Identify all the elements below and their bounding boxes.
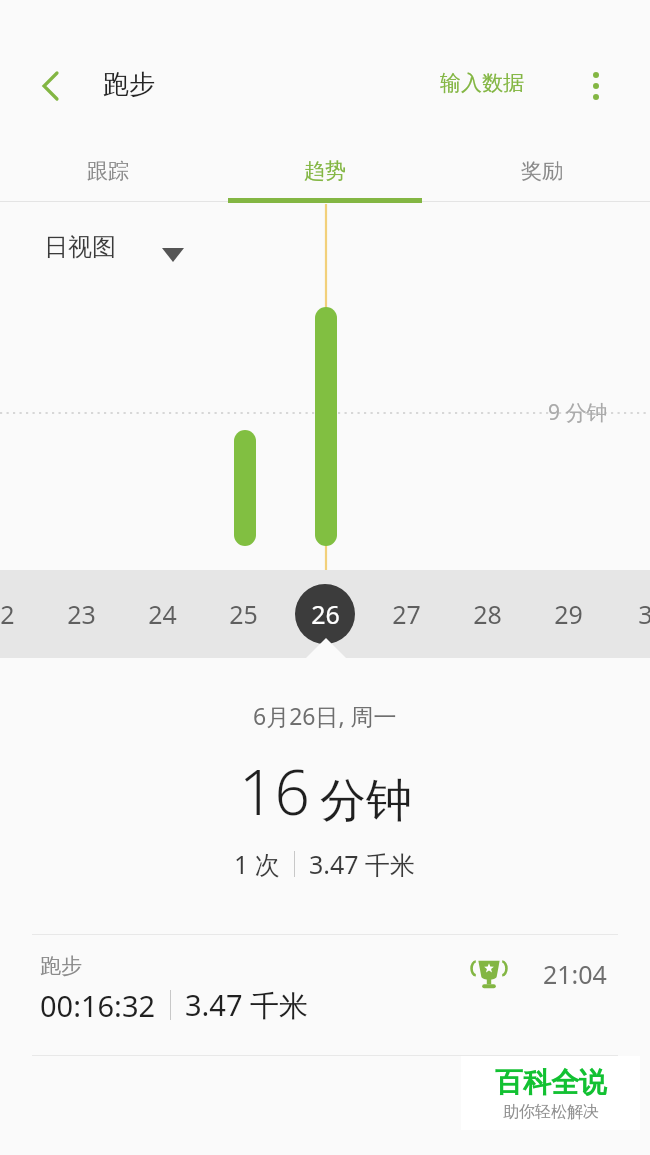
button[interactable]: 跑步 — [0, 935, 650, 1055]
button[interactable]: More options — [570, 60, 622, 112]
staticText: 00:16:32 — [40, 986, 156, 1025]
staticText: 6月26日, 周一 — [253, 700, 397, 731]
button[interactable]: 24 — [129, 580, 195, 648]
staticText: 2 — [0, 597, 15, 631]
button[interactable]: 29 — [535, 580, 601, 648]
staticText: 24 — [148, 597, 177, 631]
button[interactable]: 26 — [292, 580, 358, 648]
button[interactable]: 27 — [373, 580, 439, 648]
button[interactable]: 奖励 — [433, 140, 650, 202]
staticText: 跑步 — [103, 68, 155, 101]
staticText: 跑步 — [40, 953, 82, 979]
button[interactable]: 25 — [210, 580, 276, 648]
staticText: 27 — [392, 597, 421, 631]
button[interactable]: 3 — [612, 580, 650, 648]
staticText: 跟踪 — [87, 158, 129, 184]
staticText: 奖励 — [521, 158, 563, 184]
staticText: 3 — [638, 597, 650, 631]
staticText: 百科全说 — [495, 1065, 607, 1100]
staticText: 3.47 千米 — [185, 985, 309, 1025]
staticText: 3.47 千米 — [309, 847, 416, 881]
button[interactable]: Change view — [160, 240, 186, 266]
staticText: 16 — [239, 749, 310, 833]
button[interactable]: Back — [26, 62, 74, 110]
staticText: 助你轻松解决 — [503, 1102, 599, 1122]
button[interactable]: 23 — [48, 580, 114, 648]
button[interactable]: 跟踪 — [0, 140, 216, 202]
button[interactable]: 28 — [454, 580, 520, 648]
button[interactable]: 日视图 — [44, 232, 116, 262]
button[interactable]: 趋势 — [216, 140, 433, 202]
button[interactable]: 2 — [0, 580, 40, 648]
staticText: 分钟 — [320, 772, 412, 830]
staticText: 28 — [473, 597, 502, 631]
staticText: 29 — [554, 597, 583, 631]
staticText: 21:04 — [543, 957, 607, 991]
staticText: 26 — [311, 597, 340, 631]
staticText: 输入数据 — [440, 70, 524, 96]
staticText: 1 次 — [234, 847, 280, 881]
staticText: 趋势 — [304, 158, 346, 184]
staticText: 25 — [229, 597, 258, 631]
staticText: 9 分钟 — [548, 398, 608, 427]
button[interactable]: 输入数据 — [440, 70, 524, 96]
staticText: 23 — [67, 597, 96, 631]
